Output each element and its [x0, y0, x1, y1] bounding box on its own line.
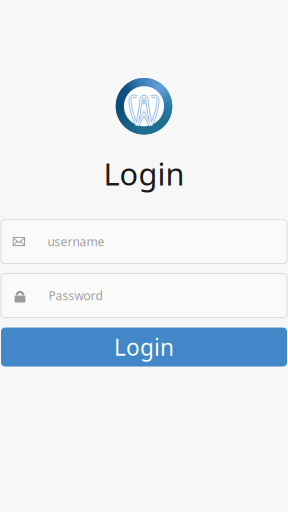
button[interactable]: Password: [1, 273, 287, 317]
staticText: Login: [114, 332, 174, 362]
staticText: Login: [103, 153, 184, 194]
button[interactable]: username: [1, 219, 287, 263]
button[interactable]: Login: [1, 327, 287, 366]
staticText: username: [48, 233, 105, 249]
staticText: Password: [48, 287, 102, 303]
